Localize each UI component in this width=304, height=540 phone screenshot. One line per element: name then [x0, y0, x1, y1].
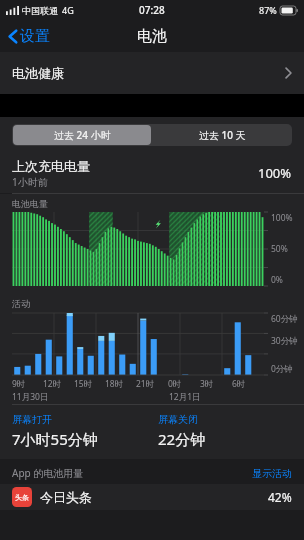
staticText: 0%	[271, 274, 283, 286]
staticText: 设置	[20, 27, 50, 46]
staticText: 活动	[12, 298, 30, 309]
staticText: 6时	[232, 378, 246, 390]
staticText: 11月30日	[12, 391, 49, 403]
staticText: 100%	[258, 164, 292, 182]
button[interactable]: 过去 24 小时	[13, 125, 151, 145]
button[interactable]: 返回	[6, 23, 52, 50]
staticText: 07:28	[139, 3, 165, 17]
staticText: 7小时55分钟	[12, 429, 98, 449]
staticText: 18时	[105, 378, 124, 390]
staticText: 显示活动	[252, 467, 292, 480]
staticText: 15时	[74, 378, 93, 390]
staticText: 中国联通	[22, 5, 58, 16]
staticText: 3时	[200, 378, 214, 390]
staticText: 过去 10 天	[199, 128, 246, 142]
staticText: App 的电池用量	[12, 466, 252, 480]
staticText: 21时	[136, 378, 155, 390]
staticText: 4G	[62, 4, 74, 16]
button[interactable]: 头条	[12, 484, 292, 510]
staticText: 屏幕关闭	[158, 413, 198, 426]
staticText: 42%	[268, 489, 292, 505]
button[interactable]: 上次充电电量	[12, 153, 292, 193]
staticText: 100%	[271, 212, 293, 224]
staticText: 屏幕打开	[12, 413, 52, 426]
button[interactable]: 过去 10 天	[152, 124, 292, 146]
staticText: 12时	[43, 378, 62, 390]
staticText: 22分钟	[158, 429, 206, 449]
staticText: 电池	[137, 27, 167, 46]
staticText: 50%	[271, 243, 288, 255]
staticText: 上次充电电量	[12, 158, 90, 174]
staticText: 30分钟	[271, 335, 298, 347]
staticText: 过去 24 小时	[54, 128, 111, 142]
staticText: 电池健康	[12, 65, 64, 81]
staticText: 今日头条	[40, 489, 268, 505]
staticText: 12月1日	[169, 391, 201, 403]
staticText: 电池电量	[12, 198, 48, 209]
button[interactable]: 电池健康	[0, 52, 304, 94]
staticText: 60分钟	[271, 313, 298, 325]
staticText: 9时	[12, 378, 26, 390]
staticText: 87%	[259, 4, 277, 16]
staticText: 0分钟	[271, 363, 293, 375]
staticText: 1小时前	[12, 175, 48, 189]
staticText: 0时	[168, 378, 182, 390]
other: 返回	[8, 28, 18, 45]
staticText: 头条	[15, 493, 29, 502]
button[interactable]: 显示活动	[252, 467, 292, 480]
